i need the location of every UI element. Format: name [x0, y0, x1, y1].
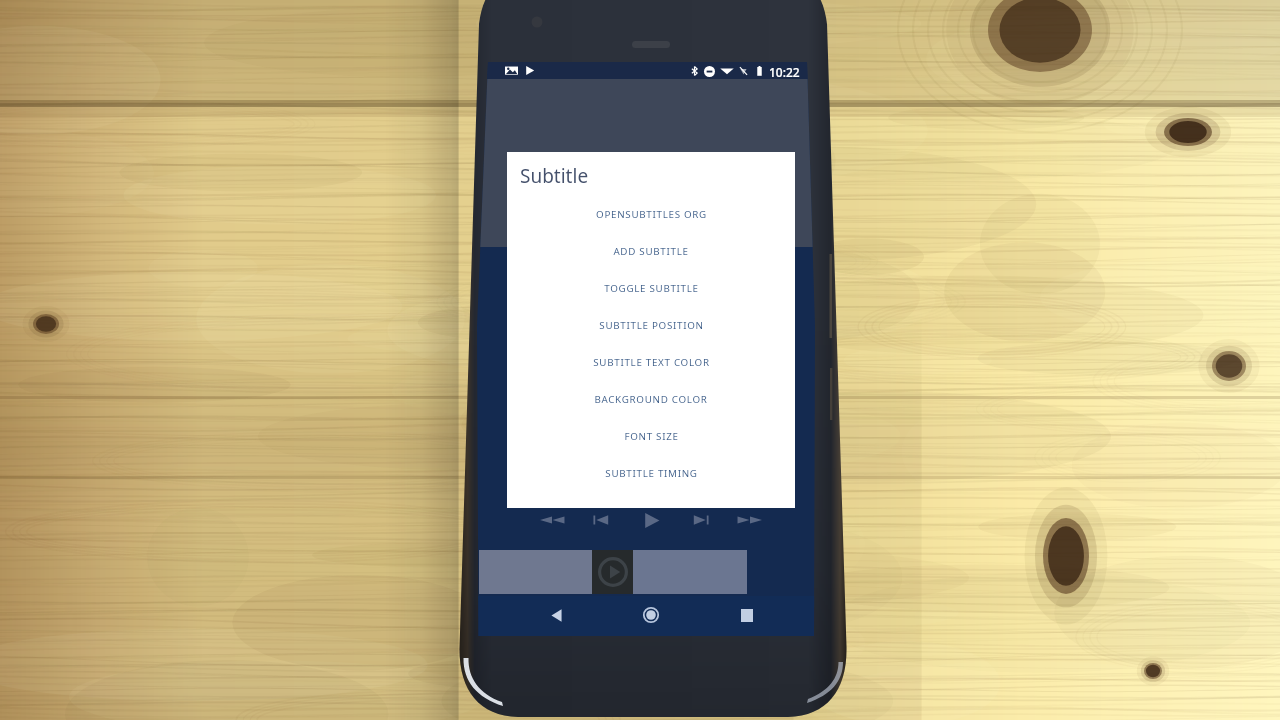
button[interactable]: TOGGLE SUBTITLE: [507, 270, 795, 307]
staticText: SUBTITLE POSITION: [599, 319, 704, 332]
button[interactable]: Previous: [592, 512, 610, 528]
button[interactable]: SUBTITLE TIMING: [507, 455, 795, 492]
button[interactable]: Recents: [733, 601, 761, 629]
staticText: OPENSUBTITLES ORG: [596, 208, 707, 221]
button[interactable]: BACKGROUND COLOR: [507, 381, 795, 418]
staticText: TOGGLE SUBTITLE: [604, 282, 699, 295]
button[interactable]: ADD SUBTITLE: [507, 233, 795, 270]
staticText: SUBTITLE TEXT COLOR: [593, 356, 710, 369]
button[interactable]: Play: [641, 511, 662, 530]
staticText: FONT SIZE: [624, 430, 679, 443]
staticText: ADD SUBTITLE: [613, 245, 689, 258]
button[interactable]: Back: [542, 601, 570, 629]
staticText: 10:22: [769, 64, 800, 80]
button[interactable]: FONT SIZE: [507, 418, 795, 455]
button[interactable]: OPENSUBTITLES ORG: [507, 196, 795, 233]
staticText: BACKGROUND COLOR: [594, 393, 708, 406]
button[interactable]: Rewind: [539, 512, 565, 528]
staticText: Subtitle: [520, 163, 589, 189]
button[interactable]: SUBTITLE TEXT COLOR: [507, 344, 795, 381]
button[interactable]: Home: [637, 601, 665, 629]
button[interactable]: Next: [692, 512, 710, 528]
staticText: SUBTITLE TIMING: [605, 467, 698, 480]
button[interactable]: Fast forward: [737, 512, 763, 528]
button[interactable]: SUBTITLE POSITION: [507, 307, 795, 344]
